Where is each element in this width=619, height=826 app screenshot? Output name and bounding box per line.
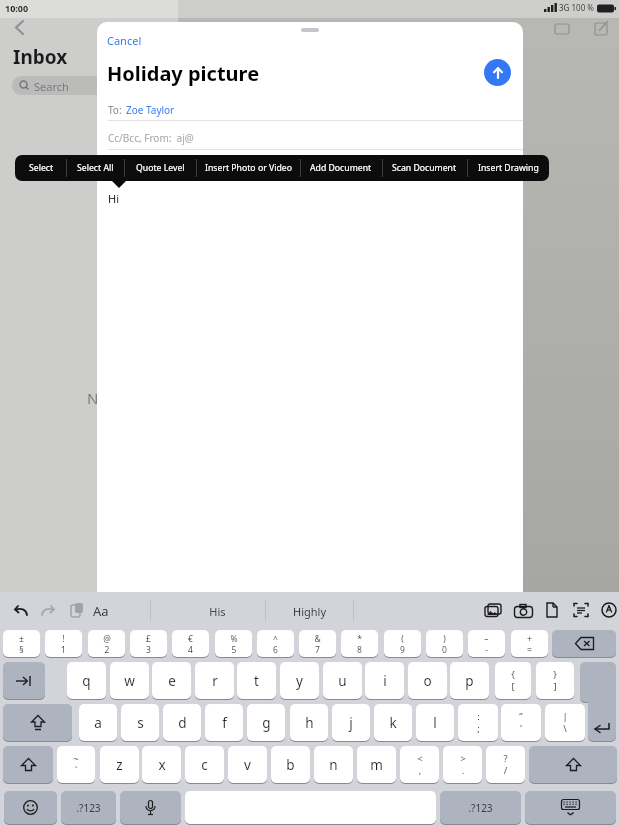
button[interactable]: e xyxy=(152,662,191,699)
button[interactable]: Select All xyxy=(66,155,124,181)
button[interactable]: x xyxy=(142,746,181,783)
button[interactable]: ) 0 xyxy=(426,630,463,657)
button[interactable]: j xyxy=(332,704,370,741)
button[interactable]: n xyxy=(314,746,353,783)
button[interactable] xyxy=(573,602,589,618)
button[interactable]: ” ’ xyxy=(501,704,541,741)
staticText: Select xyxy=(29,162,54,174)
button[interactable]: @ 2 xyxy=(88,630,125,657)
button[interactable] xyxy=(3,662,45,699)
button[interactable]: h xyxy=(290,704,328,741)
button[interactable] xyxy=(185,791,436,824)
button[interactable]: m xyxy=(357,746,396,783)
button[interactable]: > . xyxy=(443,746,482,783)
button[interactable] xyxy=(120,791,181,824)
staticText: Inbox xyxy=(13,44,68,70)
button[interactable]: .?123 xyxy=(440,791,521,824)
button[interactable]: Add Document xyxy=(301,155,381,181)
button[interactable]: Insert Photo or Video xyxy=(197,155,299,181)
staticText: 10:00 xyxy=(5,2,29,14)
button[interactable] xyxy=(3,746,53,783)
button[interactable]: p xyxy=(450,662,489,699)
button[interactable]: t xyxy=(237,662,276,699)
button[interactable]: .?123 xyxy=(61,791,116,824)
button[interactable] xyxy=(484,59,511,86)
button[interactable] xyxy=(14,603,30,619)
button[interactable] xyxy=(3,704,72,741)
button[interactable]: Zoe Taylor xyxy=(126,103,175,117)
staticText: ? / xyxy=(503,752,508,777)
button[interactable]: Select xyxy=(16,155,66,181)
button[interactable] xyxy=(484,603,502,618)
button[interactable]: : ; xyxy=(458,704,498,741)
button[interactable]: ~ ` xyxy=(57,746,95,783)
button[interactable]: r xyxy=(195,662,234,699)
button[interactable]: ± § xyxy=(3,630,40,657)
button[interactable] xyxy=(514,604,533,618)
staticText: h xyxy=(305,714,314,732)
button[interactable] xyxy=(69,602,85,619)
button[interactable]: * 8 xyxy=(341,630,378,657)
button[interactable]: u xyxy=(323,662,362,699)
button[interactable]: € 4 xyxy=(172,630,209,657)
button[interactable]: y xyxy=(280,662,319,699)
staticText: w xyxy=(124,672,135,690)
button[interactable] xyxy=(4,791,57,824)
staticText: Holiday picture xyxy=(107,60,260,87)
staticText: Scan Document xyxy=(392,162,457,174)
button[interactable]: & 7 xyxy=(299,630,336,657)
button[interactable]: g xyxy=(247,704,285,741)
button[interactable] xyxy=(41,603,57,619)
button[interactable]: ( 9 xyxy=(384,630,421,657)
button[interactable]: } ] xyxy=(536,662,574,699)
button[interactable]: Cancel xyxy=(107,33,142,48)
button[interactable]: c xyxy=(185,746,224,783)
staticText: y xyxy=(296,672,303,690)
staticText: l xyxy=(433,714,437,732)
button[interactable] xyxy=(546,602,558,618)
button[interactable]: < , xyxy=(400,746,439,783)
staticText: ^ 6 xyxy=(273,633,278,655)
button[interactable]: z xyxy=(100,746,139,783)
button[interactable] xyxy=(12,76,178,95)
staticText: g xyxy=(262,714,271,732)
button[interactable] xyxy=(529,746,617,783)
button[interactable]: b xyxy=(271,746,310,783)
button[interactable]: a xyxy=(79,704,117,741)
button[interactable]: w xyxy=(110,662,149,699)
button[interactable]: Quote Level xyxy=(125,155,195,181)
button[interactable] xyxy=(601,602,617,618)
staticText: q xyxy=(82,672,91,690)
button[interactable]: s xyxy=(121,704,159,741)
staticText: { [ xyxy=(511,668,515,693)
button[interactable] xyxy=(588,694,616,741)
staticText: f xyxy=(222,714,227,732)
button[interactable]: o xyxy=(408,662,447,699)
button[interactable]: q xyxy=(67,662,106,699)
button[interactable]: Insert Drawing xyxy=(468,155,548,181)
staticText: : ; xyxy=(477,710,480,735)
button[interactable]: % 5 xyxy=(215,630,252,657)
button[interactable] xyxy=(580,662,616,702)
staticText: – - xyxy=(484,633,489,655)
staticText: No Message Selected xyxy=(87,388,238,408)
button[interactable]: + = xyxy=(511,630,548,657)
button[interactable]: { [ xyxy=(495,662,531,699)
button[interactable]: ! 1 xyxy=(45,630,82,657)
button[interactable]: Scan Document xyxy=(382,155,466,181)
button[interactable]: i xyxy=(365,662,404,699)
button[interactable]: l xyxy=(416,704,454,741)
button[interactable] xyxy=(525,791,616,824)
staticText: o xyxy=(423,672,432,690)
button[interactable] xyxy=(552,630,616,657)
button[interactable]: v xyxy=(228,746,267,783)
staticText: m xyxy=(370,756,383,774)
button[interactable]: ^ 6 xyxy=(257,630,294,657)
button[interactable]: £ 3 xyxy=(130,630,167,657)
button[interactable]: – - xyxy=(468,630,505,657)
button[interactable]: k xyxy=(374,704,412,741)
button[interactable]: d xyxy=(163,704,201,741)
button[interactable]: ? / xyxy=(486,746,525,783)
button[interactable]: f xyxy=(205,704,243,741)
button[interactable]: | \ xyxy=(545,704,585,741)
